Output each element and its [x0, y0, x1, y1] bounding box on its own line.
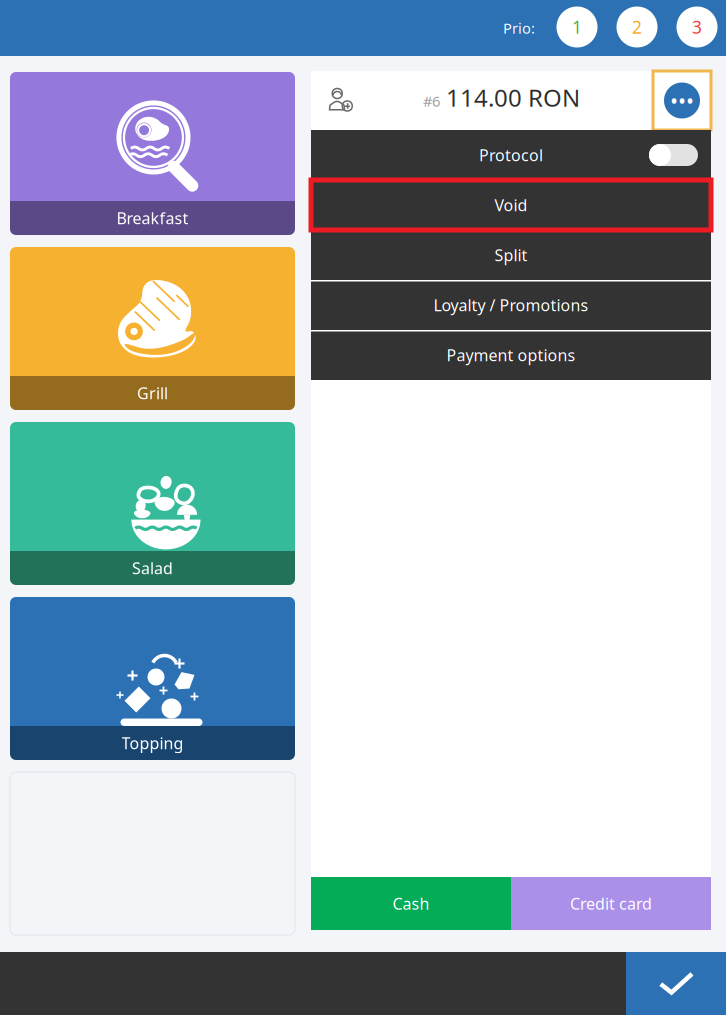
button[interactable]: Confirm	[626, 952, 726, 1015]
staticText: Prio:	[503, 18, 535, 38]
button[interactable]: Salad	[10, 422, 295, 585]
staticText: 1	[572, 15, 582, 38]
button[interactable]: More options	[653, 71, 711, 130]
button[interactable]: Void	[311, 180, 711, 230]
staticText: •••	[670, 86, 694, 115]
button[interactable]: Protocol	[311, 130, 711, 180]
button[interactable]: Add customer	[312, 72, 360, 114]
button[interactable]: 1	[556, 6, 597, 47]
staticText: 2	[632, 15, 642, 38]
staticText: Credit card	[570, 893, 652, 914]
button[interactable]: Payment options	[311, 330, 711, 380]
staticText: Salad	[132, 557, 173, 579]
button[interactable]: Breakfast	[10, 72, 295, 235]
staticText: Grill	[137, 382, 168, 404]
button[interactable]: Topping	[10, 597, 295, 760]
button[interactable]: 3	[676, 6, 717, 47]
staticText: Breakfast	[116, 207, 188, 229]
staticText: 114.00 RON	[440, 82, 580, 113]
staticText: Payment options	[446, 344, 575, 366]
staticText: Cash	[392, 893, 429, 914]
button[interactable]: Cash	[311, 877, 511, 930]
button[interactable]: Grill	[10, 247, 295, 410]
staticText: Split	[494, 244, 527, 266]
button[interactable]: 2	[616, 6, 657, 47]
staticText: Protocol	[479, 144, 543, 166]
button[interactable]: Split	[311, 230, 711, 280]
button[interactable]: Loyalty / Promotions	[311, 280, 711, 330]
staticText: #6	[423, 91, 440, 111]
staticText: Loyalty / Promotions	[433, 294, 588, 316]
staticText: Topping	[121, 732, 183, 754]
staticText: 3	[692, 15, 702, 38]
staticText: Void	[494, 194, 527, 216]
button[interactable]: Credit card	[511, 877, 711, 930]
